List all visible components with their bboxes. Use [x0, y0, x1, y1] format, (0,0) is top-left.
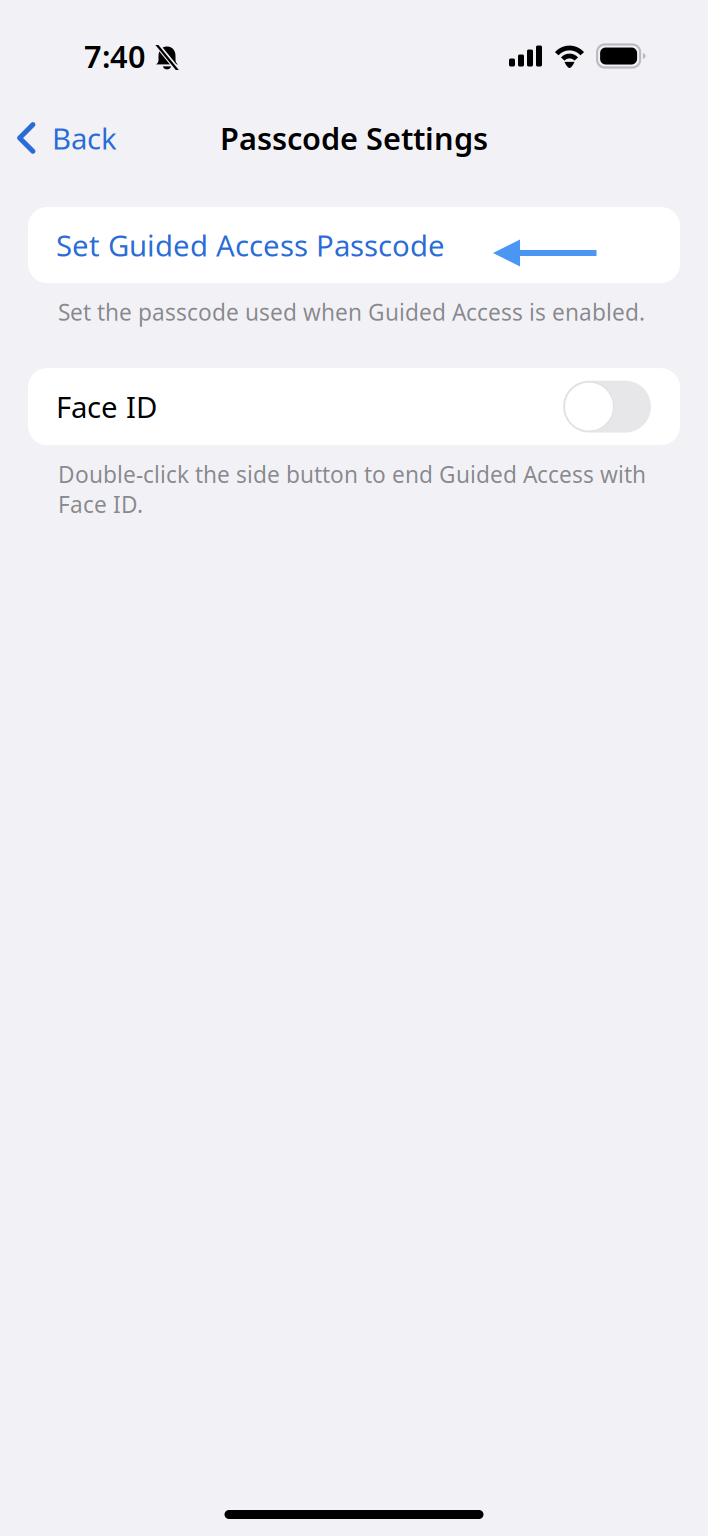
staticText: Face ID — [56, 387, 157, 426]
button[interactable]: Face ID — [563, 381, 651, 433]
staticText: Set the passcode used when Guided Access… — [58, 297, 645, 327]
button[interactable]: Back — [0, 108, 131, 168]
staticText: Back — [52, 118, 117, 157]
staticText: Passcode Settings — [220, 118, 488, 158]
staticText: Set Guided Access Passcode — [56, 225, 445, 264]
button[interactable]: Set Guided Access Passcode — [28, 207, 680, 283]
staticText: 7:40 — [84, 36, 146, 76]
staticText: Double-click the side button to end Guid… — [58, 459, 646, 519]
